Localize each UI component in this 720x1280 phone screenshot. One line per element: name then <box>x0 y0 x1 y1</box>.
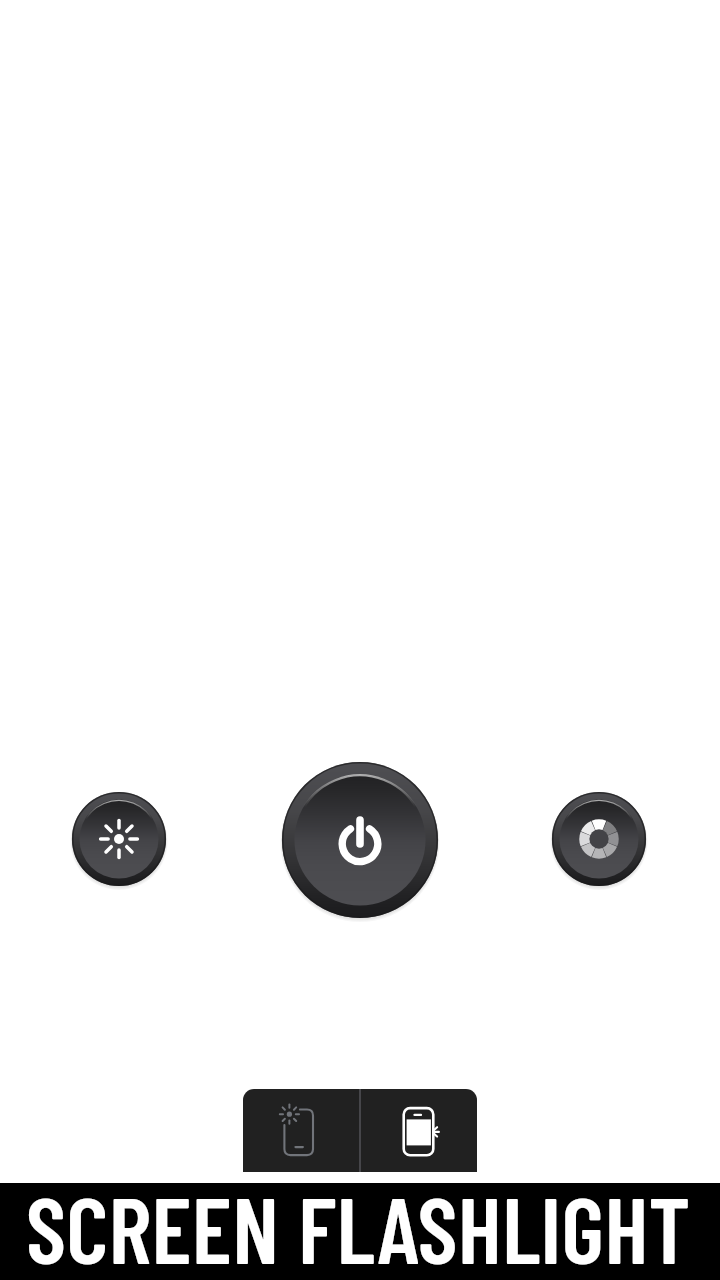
button[interactable]: Flashlight <box>243 1089 359 1172</box>
button[interactable]: Colour <box>552 792 646 886</box>
button[interactable]: Screen flashlight <box>361 1089 477 1172</box>
button[interactable]: Power <box>282 762 438 918</box>
staticText: SCREEN FLASHLIGHT <box>26 1172 691 1269</box>
button[interactable]: Brightness <box>72 792 166 886</box>
